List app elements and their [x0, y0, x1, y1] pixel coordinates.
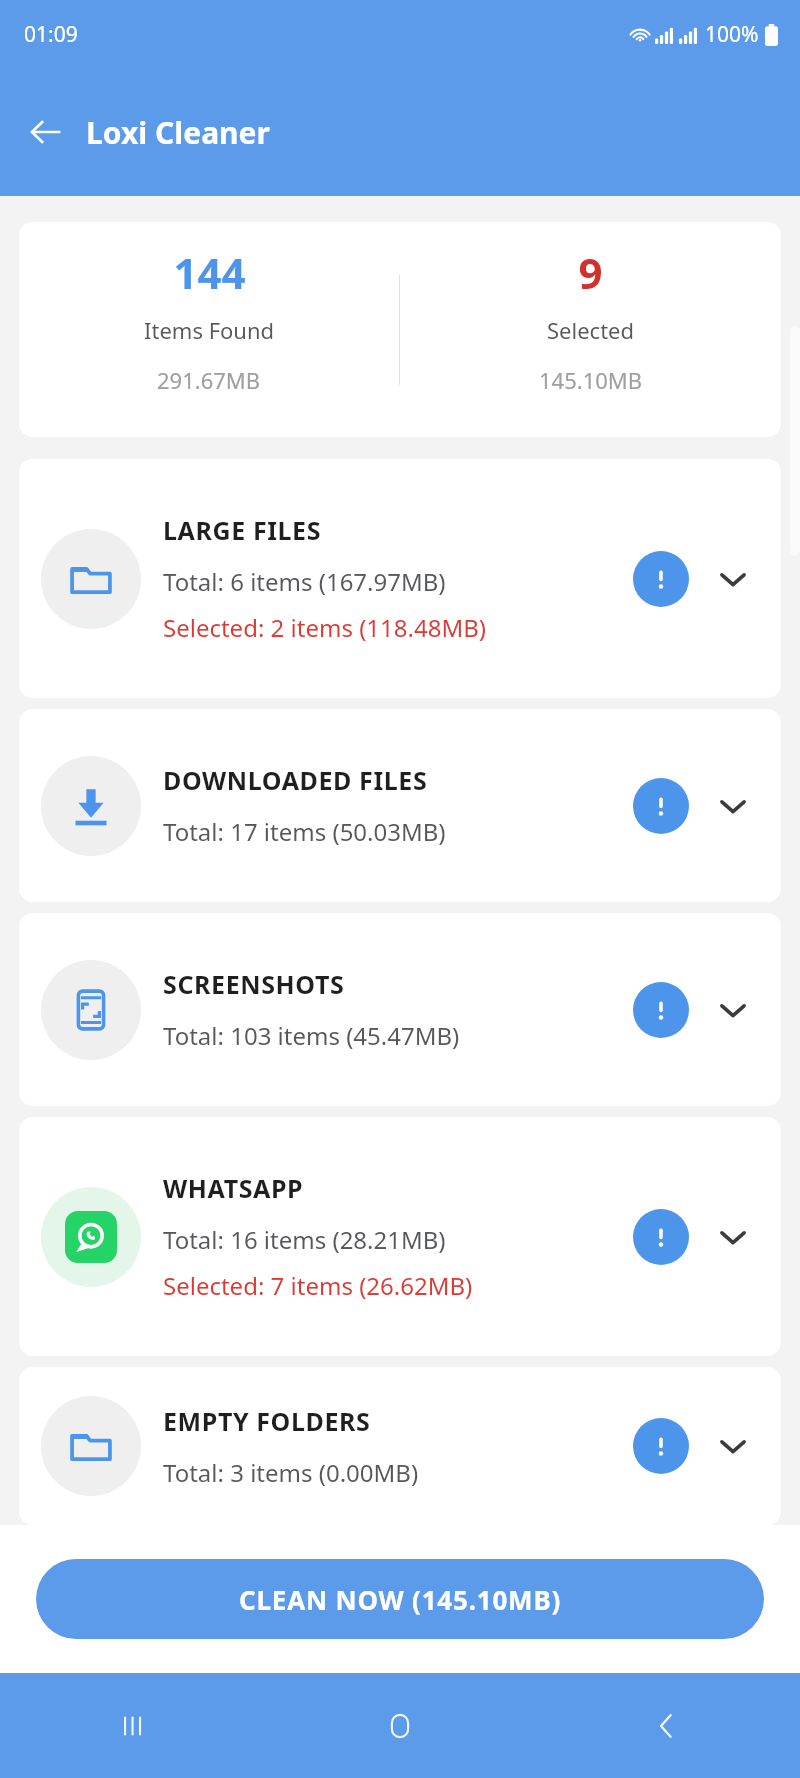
- staticText: Total: 3 items (0.00MB): [163, 1456, 419, 1489]
- staticText: DOWNLOADED FILES: [163, 763, 428, 797]
- staticText: EMPTY FOLDERS: [163, 1404, 371, 1438]
- staticText: Selected: 7 items (26.62MB): [163, 1269, 473, 1302]
- button[interactable]: Expand: [707, 1211, 759, 1263]
- button[interactable]: Back: [14, 100, 78, 164]
- button[interactable]: Home: [360, 1686, 440, 1766]
- staticText: SCREENSHOTS: [163, 967, 345, 1001]
- button[interactable]: Info: [633, 778, 689, 834]
- staticText: Total: 6 items (167.97MB): [163, 565, 446, 598]
- staticText: 145.10MB: [539, 365, 643, 395]
- button[interactable]: Info: [633, 1418, 689, 1474]
- button[interactable]: Expand: [707, 553, 759, 605]
- staticText: Total: 16 items (28.21MB): [163, 1223, 446, 1256]
- staticText: Total: 103 items (45.47MB): [163, 1019, 460, 1052]
- staticText: 144: [173, 244, 246, 301]
- button[interactable]: EMPTY FOLDERS: [19, 1367, 781, 1525]
- button[interactable]: Back: [627, 1686, 707, 1766]
- staticText: Selected: 2 items (118.48MB): [163, 611, 486, 644]
- staticText: CLEAN NOW (145.10MB): [239, 1582, 562, 1617]
- button[interactable]: LARGE FILES: [19, 459, 781, 698]
- staticText: Selected: [547, 315, 635, 345]
- button[interactable]: Info: [633, 982, 689, 1038]
- staticText: Loxi Cleaner: [86, 112, 270, 153]
- staticText: LARGE FILES: [163, 513, 322, 547]
- button[interactable]: SCREENSHOTS: [19, 913, 781, 1106]
- button[interactable]: Recents: [93, 1686, 173, 1766]
- button[interactable]: WHATSAPP: [19, 1117, 781, 1356]
- button[interactable]: Expand: [707, 984, 759, 1036]
- staticText: Total: 17 items (50.03MB): [163, 815, 446, 848]
- staticText: 100%: [705, 20, 759, 49]
- button[interactable]: DOWNLOADED FILES: [19, 709, 781, 902]
- button[interactable]: CLEAN NOW (145.10MB): [36, 1559, 764, 1639]
- staticText: WHATSAPP: [163, 1171, 304, 1205]
- button[interactable]: Info: [633, 551, 689, 607]
- staticText: Items Found: [144, 315, 275, 345]
- button[interactable]: Expand: [707, 780, 759, 832]
- staticText: 291.67MB: [157, 365, 261, 395]
- button[interactable]: 144: [19, 222, 781, 437]
- button[interactable]: Expand: [707, 1420, 759, 1472]
- staticText: 9: [578, 244, 603, 301]
- staticText: 01:09: [24, 20, 78, 49]
- button[interactable]: Info: [633, 1209, 689, 1265]
